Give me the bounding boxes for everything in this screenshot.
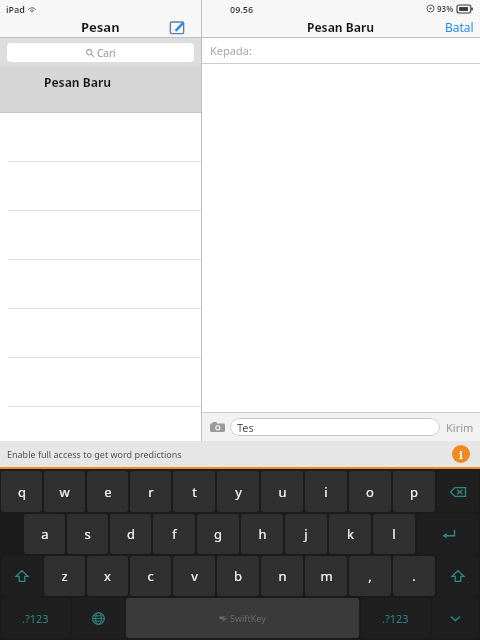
button[interactable]: Kirim <box>446 420 474 435</box>
button[interactable]: u <box>261 471 303 512</box>
staticText: j <box>304 525 308 543</box>
staticText: x <box>104 567 111 585</box>
staticText: k <box>347 525 354 543</box>
staticText: . <box>412 567 416 585</box>
button[interactable]: w <box>44 471 85 512</box>
staticText: Pesan Baru <box>44 74 112 90</box>
button[interactable] <box>417 514 479 554</box>
button[interactable]: . <box>393 556 435 596</box>
button[interactable]: z <box>44 556 85 596</box>
staticText: t <box>192 483 197 501</box>
staticText: i <box>324 483 328 501</box>
staticText: 09.56 <box>230 3 254 15</box>
staticText: .?123 <box>382 611 409 626</box>
button[interactable]: Compose new message <box>167 17 187 37</box>
staticText: .?123 <box>22 611 49 626</box>
button[interactable]: Shift <box>437 556 479 596</box>
button[interactable]: p <box>393 471 435 512</box>
staticText: Pesan Baru <box>307 19 375 35</box>
button[interactable]: Kepada: <box>202 38 480 63</box>
staticText: Kirim <box>446 420 474 435</box>
button[interactable]: g <box>197 514 239 554</box>
staticText: Kepada: <box>210 43 252 58</box>
button[interactable]: Attach photo <box>208 418 226 436</box>
staticText: c <box>147 567 154 585</box>
staticText: w <box>59 483 70 501</box>
button[interactable]: q <box>1 471 42 512</box>
button[interactable]: v <box>173 556 215 596</box>
button[interactable]: b <box>217 556 259 596</box>
staticText: m <box>320 567 333 585</box>
staticText: iPad <box>6 3 25 15</box>
button[interactable]: d <box>110 514 151 554</box>
button[interactable]: Tes <box>230 418 440 436</box>
button[interactable]: Pesan Baru <box>0 66 201 112</box>
button[interactable]: Batal <box>445 19 474 35</box>
button[interactable]: j <box>285 514 327 554</box>
button[interactable]: t <box>173 471 215 512</box>
button[interactable]: Enable full access to get word predictio… <box>0 441 480 467</box>
staticText: s <box>84 525 91 543</box>
staticText: Tes <box>237 420 254 435</box>
button[interactable]: e <box>87 471 128 512</box>
staticText: Cari <box>97 46 116 60</box>
staticText: Pesan <box>81 18 120 36</box>
staticText: a <box>41 525 49 543</box>
staticText: g <box>214 525 222 543</box>
button[interactable]: s <box>67 514 108 554</box>
staticText: Batal <box>445 19 474 35</box>
staticText: e <box>104 483 112 501</box>
staticText: i <box>459 447 463 462</box>
staticText: d <box>127 525 135 543</box>
staticText: p <box>410 483 418 501</box>
button[interactable]: Space <box>126 598 359 638</box>
staticText: r <box>148 483 154 501</box>
staticText: b <box>234 567 242 585</box>
staticText: q <box>18 483 26 501</box>
staticText: , <box>368 567 372 585</box>
button[interactable]: Hide keyboard <box>432 598 479 638</box>
staticText: y <box>235 483 242 501</box>
button[interactable]: .?123 <box>1 598 70 638</box>
button[interactable]: Shift <box>1 556 42 596</box>
button[interactable]: o <box>349 471 391 512</box>
button[interactable]: a <box>24 514 65 554</box>
staticText: Enable full access to get word predictio… <box>7 448 182 460</box>
button[interactable]: y <box>217 471 259 512</box>
staticText: l <box>392 525 396 543</box>
staticText: z <box>61 567 68 585</box>
button[interactable]: h <box>241 514 283 554</box>
staticText: u <box>278 483 287 501</box>
button[interactable]: n <box>261 556 303 596</box>
staticText: o <box>366 483 374 501</box>
button[interactable]: i <box>305 471 347 512</box>
button[interactable]: Cari <box>7 43 194 62</box>
staticText: 93% <box>437 3 454 14</box>
button[interactable]: l <box>373 514 415 554</box>
button[interactable]: , <box>349 556 391 596</box>
button[interactable]: f <box>153 514 195 554</box>
button[interactable]: c <box>130 556 171 596</box>
button[interactable]: Switch language <box>72 598 124 638</box>
staticText: f <box>172 525 177 543</box>
button[interactable]: k <box>329 514 371 554</box>
staticText: n <box>278 567 287 585</box>
staticText: SwiftKey <box>230 612 266 624</box>
button[interactable] <box>437 471 479 512</box>
button[interactable]: r <box>130 471 171 512</box>
button[interactable]: x <box>87 556 128 596</box>
button[interactable]: .?123 <box>361 598 430 638</box>
staticText: v <box>191 567 198 585</box>
staticText: h <box>258 525 267 543</box>
button[interactable]: Info <box>452 445 470 463</box>
button[interactable]: m <box>305 556 347 596</box>
